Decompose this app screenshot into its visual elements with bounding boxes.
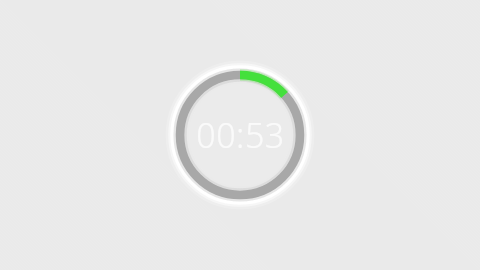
staticText: 00:53 [196,112,285,158]
button[interactable]: Timer, 00:53 remaining [166,61,314,209]
